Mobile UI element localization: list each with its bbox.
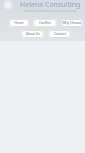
staticText: Home <box>14 21 24 25</box>
staticText: Why Choose Us <box>61 21 83 25</box>
button[interactable]: Contact <box>48 30 71 38</box>
staticText: Helena Consulting <box>20 0 81 10</box>
staticText: Contact <box>54 32 66 36</box>
button[interactable]: Conflict Resolution <box>33 19 57 27</box>
staticText: About Us <box>26 32 40 36</box>
button[interactable]: Why Choose Us <box>61 19 83 27</box>
staticText: Conflict Resolution for Families and Gro… <box>24 9 77 13</box>
staticText: Conflict Resolution <box>33 21 57 25</box>
button[interactable]: Helena Consulting logo <box>2 0 17 12</box>
button[interactable]: About Us <box>21 30 44 38</box>
button[interactable]: Home <box>9 19 29 27</box>
